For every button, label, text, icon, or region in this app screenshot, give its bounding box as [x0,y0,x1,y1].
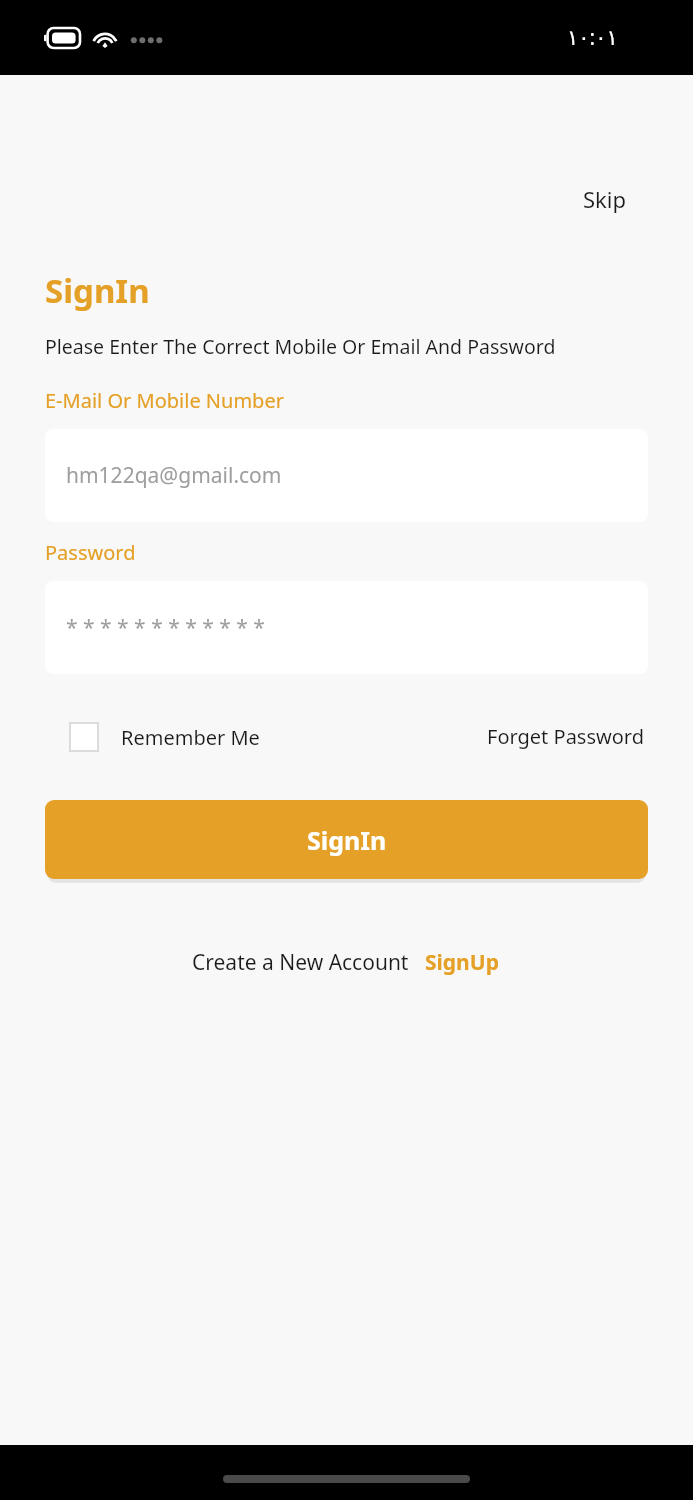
button[interactable]: hm122qa@gmail.com [45,429,648,522]
staticText: SignIn [307,823,387,857]
staticText: Remember Me [121,724,260,751]
staticText: Please Enter The Correct Mobile Or Email… [45,333,556,360]
button[interactable]: Forget Password [483,719,648,754]
staticText: SignIn [45,268,150,313]
staticText: E-Mail Or Mobile Number [45,387,284,414]
button[interactable]: * * * * * * * * * * * * [45,581,648,674]
staticText: Forget Password [487,723,644,750]
staticText: SignUp [425,948,499,977]
staticText: Skip [583,184,627,214]
staticText: hm122qa@gmail.com [66,461,282,490]
button[interactable]: Skip [577,178,633,220]
staticText: ١٠:٠١ [567,23,618,52]
button[interactable]: SignIn [45,800,648,879]
staticText: * * * * * * * * * * * * [66,613,265,642]
button[interactable]: Remember Me [45,722,260,752]
button[interactable]: SignUp [423,944,501,981]
staticText: Password [45,539,136,566]
staticText: Create a New Account [192,948,409,977]
